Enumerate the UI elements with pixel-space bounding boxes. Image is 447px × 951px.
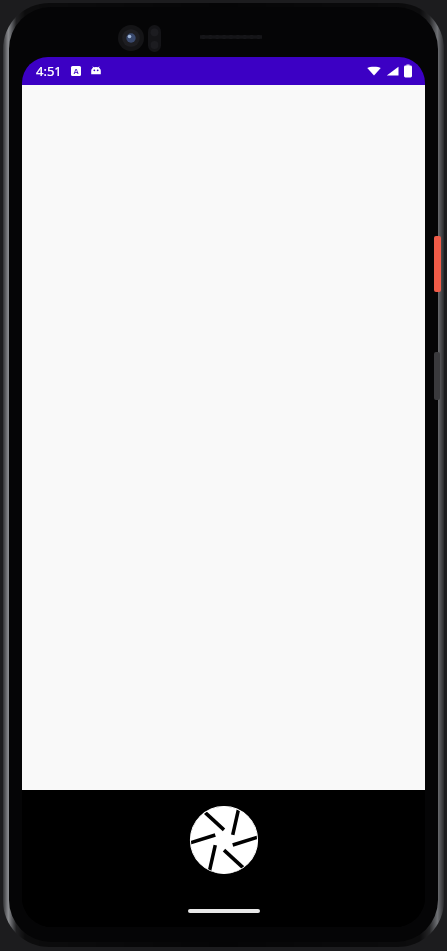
staticText: A bbox=[73, 66, 79, 76]
staticText: 4:51 bbox=[36, 62, 62, 80]
other: Power button bbox=[434, 236, 441, 292]
button[interactable]: Take photo bbox=[189, 805, 259, 875]
